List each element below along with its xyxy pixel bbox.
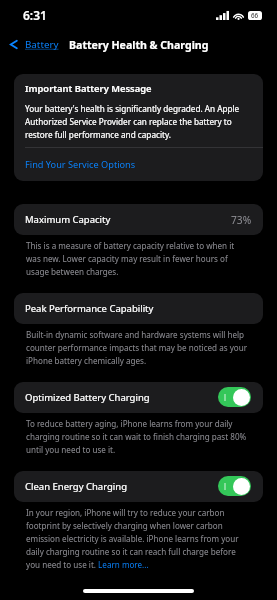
staticText: Peak Performance Capability <box>25 302 154 315</box>
staticText: To reduce battery aging, iPhone learns f… <box>26 418 248 456</box>
staticText: In your region, iPhone will try to reduc… <box>26 507 248 571</box>
staticText: Clean Energy Charging <box>25 480 128 493</box>
staticText: This is a measure of battery capacity re… <box>26 240 248 278</box>
button[interactable]: Maximum Capacity <box>14 204 263 235</box>
button[interactable]: Battery <box>0 38 59 51</box>
button[interactable]: Toggle on <box>218 476 251 496</box>
staticText: Built-in dynamic software and hardware s… <box>26 329 248 367</box>
staticText: Battery Health & Charging <box>69 38 209 52</box>
staticText: Important Battery Message <box>25 82 152 95</box>
staticText: Optimized Battery Charging <box>25 391 150 404</box>
button[interactable]: Optimized Battery Charging <box>14 382 263 413</box>
button[interactable]: Find Your Service Options <box>14 148 263 181</box>
staticText: 6:31 <box>23 7 47 23</box>
staticText: 66 <box>251 11 259 20</box>
staticText: Find Your Service Options <box>25 158 136 171</box>
staticText: Your battery's health is significantly d… <box>25 103 252 141</box>
staticText: 73% <box>231 213 252 227</box>
staticText: Battery <box>25 38 59 51</box>
button[interactable]: Clean Energy Charging <box>14 471 263 502</box>
staticText: Maximum Capacity <box>25 213 111 226</box>
button[interactable]: Toggle on <box>218 387 251 407</box>
button[interactable]: Peak Performance Capability <box>14 293 263 324</box>
